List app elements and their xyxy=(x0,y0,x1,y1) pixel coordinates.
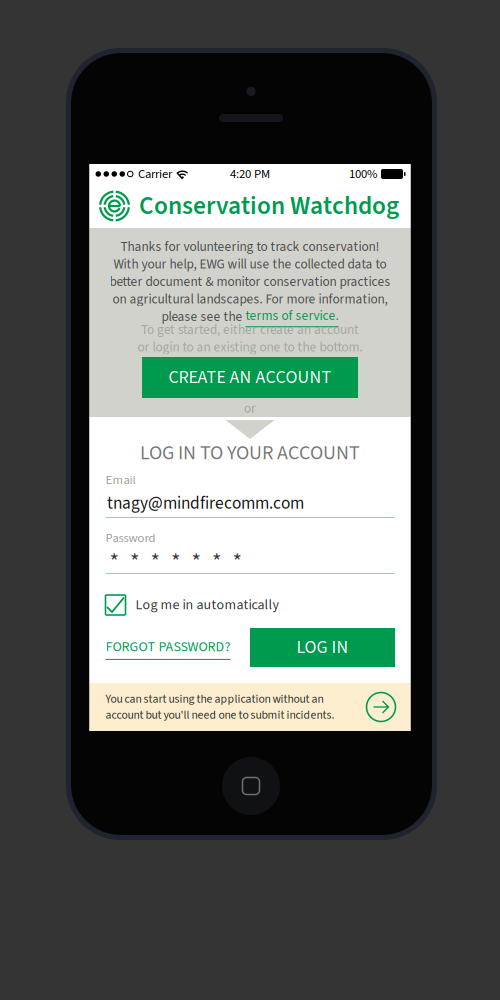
staticText: LOG IN TO YOUR ACCOUNT xyxy=(140,439,360,467)
staticText: better document & monitor conservation p… xyxy=(109,272,390,291)
staticText: Email xyxy=(105,471,135,489)
button[interactable]: Log me in automatically xyxy=(104,593,279,617)
button[interactable]: FORGOT PASSWORD? xyxy=(102,631,233,666)
staticText: * xyxy=(171,546,180,578)
staticText: Log me in automatically xyxy=(135,595,279,615)
staticText: CREATE AN ACCOUNT xyxy=(168,365,331,390)
staticText: * xyxy=(212,546,221,578)
staticText: * xyxy=(191,546,200,578)
staticText: * xyxy=(150,546,159,578)
staticText: FORGOT PASSWORD? xyxy=(105,637,230,657)
staticText: please see the xyxy=(161,307,245,326)
staticText: on agricultural landscapes. For more inf… xyxy=(112,290,387,309)
staticText: or xyxy=(244,399,256,418)
staticText: Thanks for volunteering to track conserv… xyxy=(120,237,379,256)
staticText: terms of service. xyxy=(245,306,338,325)
staticText: With your help, EWG will use the collect… xyxy=(113,255,386,274)
button[interactable]: You can start using the application with… xyxy=(89,683,410,731)
button[interactable]: LOG IN xyxy=(250,628,395,667)
staticText: tnagy@mindfirecomm.com xyxy=(107,491,304,516)
staticText: 4:20 PM xyxy=(230,165,270,183)
staticText: To get started, either create an account xyxy=(141,320,359,339)
staticText: 100% xyxy=(349,165,377,183)
staticText: Password xyxy=(105,529,155,547)
button[interactable]: CREATE AN ACCOUNT xyxy=(142,357,358,398)
staticText: * xyxy=(232,546,241,578)
staticText: or login to an existing one to the botto… xyxy=(137,338,362,357)
staticText: Conservation Watchdog xyxy=(139,188,399,224)
staticText: You can start using the application with… xyxy=(105,691,323,707)
staticText: Carrier xyxy=(138,165,172,183)
staticText: * xyxy=(109,546,118,578)
staticText: LOG IN xyxy=(296,635,348,660)
staticText: * xyxy=(130,546,139,578)
staticText: account but you'll need one to submit in… xyxy=(105,707,334,723)
